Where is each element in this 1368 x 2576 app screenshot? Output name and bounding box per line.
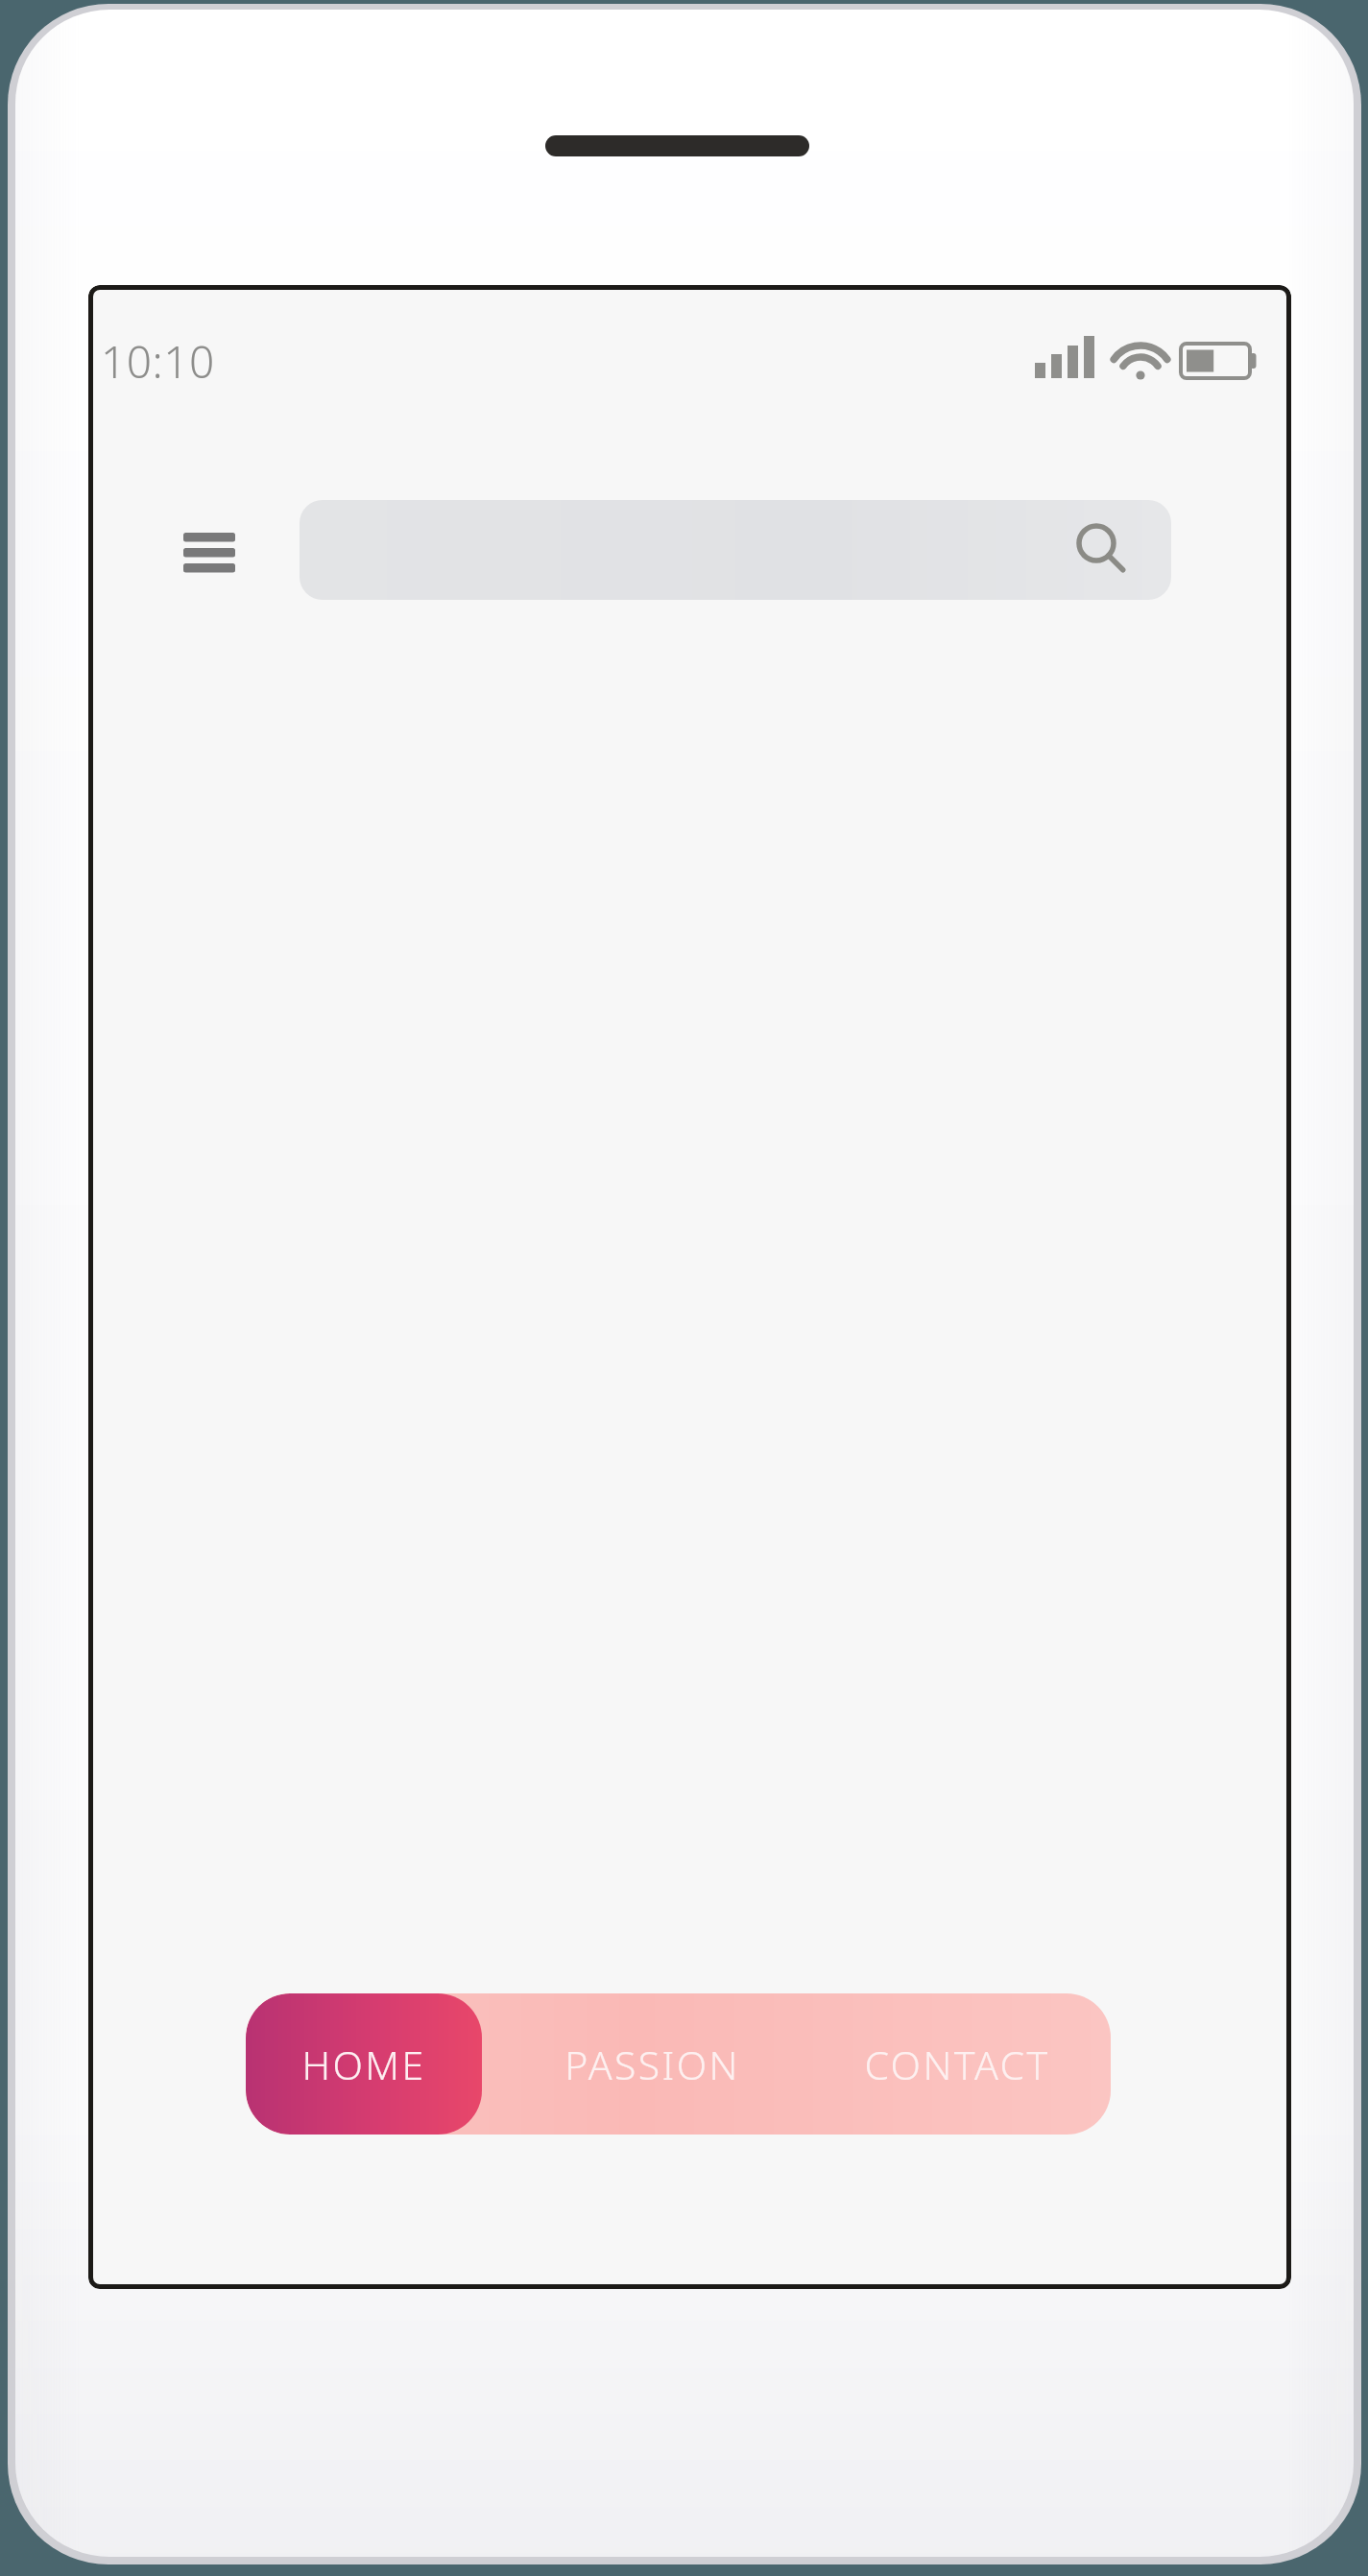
staticText: PASSION [564, 2038, 740, 2091]
staticText: HOME [301, 2038, 426, 2091]
button[interactable]: CONTACT [804, 1993, 1110, 2135]
staticText: CONTACT [864, 2038, 1050, 2091]
staticText: 10:10 [101, 331, 215, 392]
button[interactable]: HOME [246, 1993, 482, 2135]
button[interactable]: PASSION [499, 1993, 804, 2135]
button[interactable]: Search [300, 500, 1171, 600]
button[interactable]: Open menu [171, 506, 267, 592]
